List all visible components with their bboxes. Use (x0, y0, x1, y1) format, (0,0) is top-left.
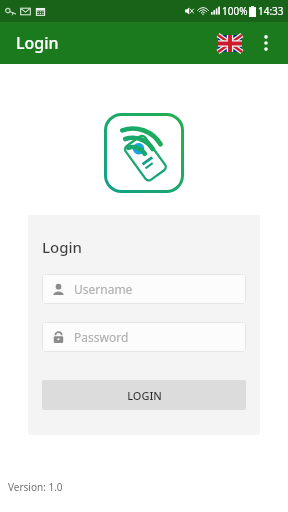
staticText: Login (16, 32, 59, 54)
staticText: Username (74, 281, 133, 297)
staticText: 14:33 (258, 4, 284, 18)
button[interactable]: Password (42, 322, 246, 352)
staticText: LOGIN (127, 388, 162, 403)
button[interactable]: Username (42, 274, 246, 304)
button[interactable]: Change language (214, 30, 246, 57)
button[interactable]: LOGIN (42, 380, 246, 410)
button[interactable]: More options (252, 29, 280, 57)
staticText: Password (74, 329, 129, 345)
staticText: Version: 1.0 (8, 480, 63, 494)
staticText: Login (42, 237, 82, 257)
staticText: 100% (222, 4, 248, 18)
